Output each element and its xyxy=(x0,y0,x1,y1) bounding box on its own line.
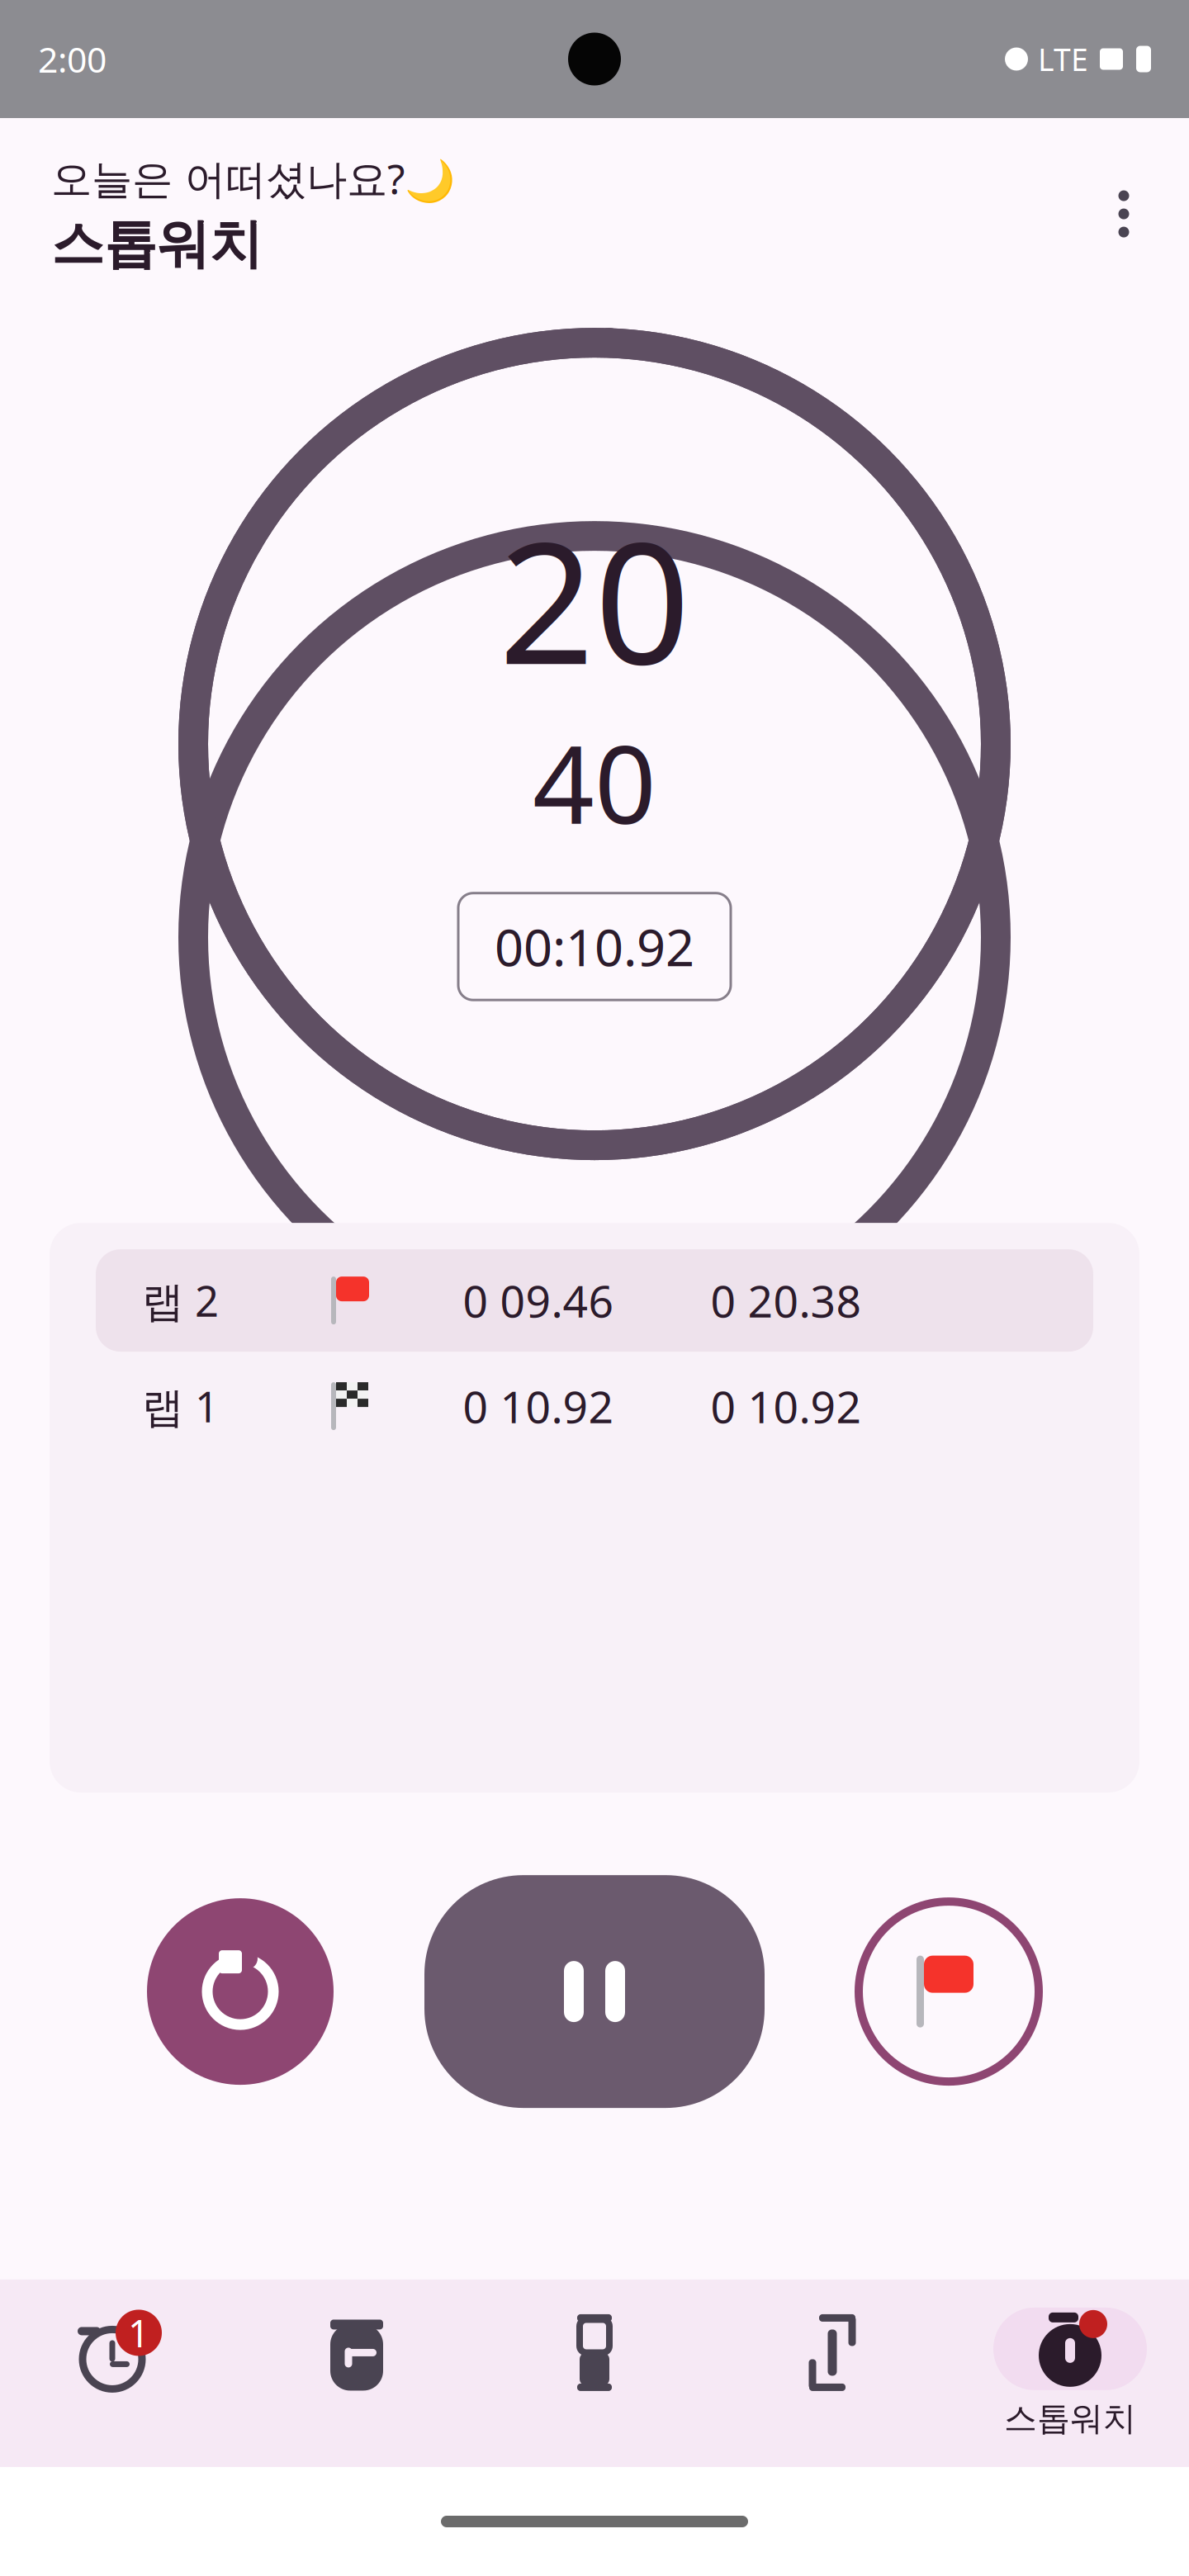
button[interactable]: Reset xyxy=(147,1898,334,2085)
staticText: 20 xyxy=(499,488,690,710)
button[interactable]: Alarm xyxy=(0,2311,238,2435)
staticText: 1 xyxy=(128,2308,149,2358)
staticText: 0 20.38 xyxy=(711,1271,862,1330)
staticText: 0 10.92 xyxy=(711,1377,862,1435)
staticText: LTE xyxy=(1038,39,1088,80)
staticText: 00:10.92 xyxy=(495,913,694,980)
button[interactable]: Lap xyxy=(855,1898,1042,2085)
button[interactable]: 랩 2 xyxy=(96,1249,1093,1352)
staticText: 랩 1 xyxy=(142,1378,219,1434)
staticText: 0 09.46 xyxy=(463,1271,614,1330)
button[interactable]: More options xyxy=(1078,169,1169,259)
button[interactable]: Tasks xyxy=(238,2311,476,2435)
button[interactable]: 스톱워치 xyxy=(951,2308,1189,2439)
button[interactable]: 랩 1 xyxy=(96,1355,1093,1457)
staticText: 랩 2 xyxy=(142,1273,219,1328)
button[interactable]: Interval timer xyxy=(713,2311,951,2435)
staticText: 2:00 xyxy=(38,36,107,82)
staticText: 스톱워치 xyxy=(1004,2398,1136,2439)
staticText: 오늘은 어떠셨나요?🌙 xyxy=(51,151,455,205)
staticText: 40 xyxy=(533,710,656,853)
button[interactable]: Timer xyxy=(476,2311,713,2435)
button[interactable]: Pause xyxy=(424,1875,765,2108)
staticText: 스톱워치 xyxy=(51,212,263,277)
staticText: 0 10.92 xyxy=(463,1377,614,1435)
